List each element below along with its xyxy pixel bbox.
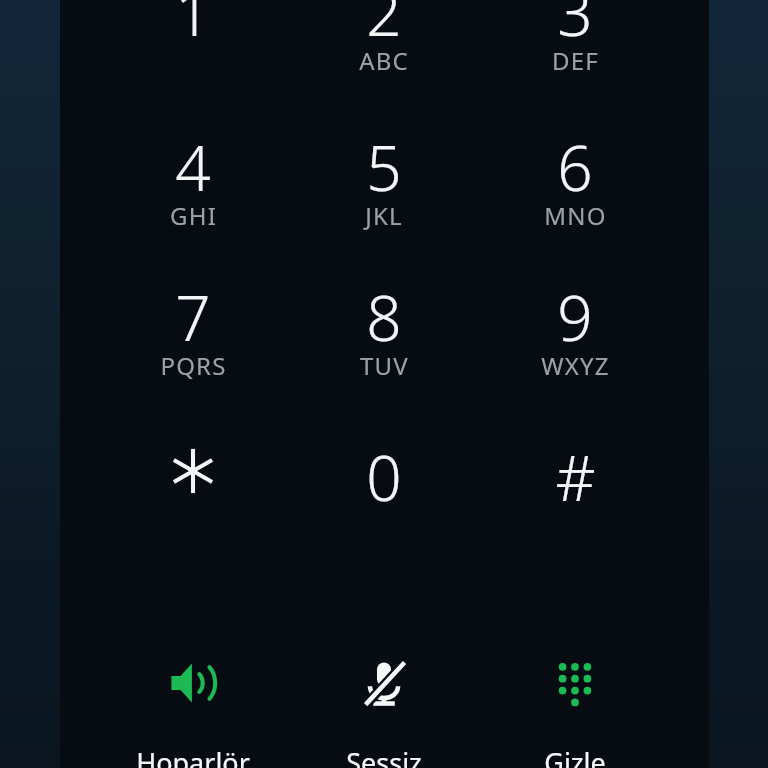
staticText: TUV [360, 349, 409, 382]
other: Gizle [544, 652, 606, 714]
button[interactable]: 2 [294, 0, 474, 102]
staticText: 2 [366, 0, 402, 42]
staticText: Gizle [544, 744, 606, 768]
staticText: Hoparlör [136, 744, 250, 768]
button[interactable]: 0 [294, 435, 474, 567]
staticText: 4 [175, 125, 211, 197]
button[interactable]: 9 [485, 275, 665, 407]
staticText: MNO [544, 199, 607, 232]
staticText: Sessiz [346, 744, 422, 768]
staticText: ABC [359, 44, 409, 77]
staticText: 9 [557, 275, 593, 347]
button[interactable]: 1 [103, 0, 283, 102]
button[interactable] [103, 435, 283, 567]
other: Sessiz [353, 652, 415, 714]
staticText: 7 [175, 275, 211, 347]
staticText: WXYZ [541, 349, 610, 382]
staticText: PQRS [160, 349, 227, 382]
staticText: 3 [557, 0, 593, 42]
button[interactable]: 4 [103, 125, 283, 257]
staticText: 5 [366, 125, 402, 197]
button[interactable]: Sessiz [294, 652, 474, 768]
button[interactable]: Hoparlör [103, 652, 283, 768]
staticText: 8 [366, 275, 402, 347]
staticText: DEF [552, 44, 599, 77]
staticText: # [555, 435, 596, 507]
button[interactable]: 7 [103, 275, 283, 407]
button[interactable]: 8 [294, 275, 474, 407]
staticText: 6 [557, 125, 593, 197]
staticText: GHI [170, 199, 217, 232]
button[interactable]: # [485, 435, 665, 567]
other: Hoparlör [162, 652, 224, 714]
button[interactable]: Gizle [485, 652, 665, 768]
staticText: 0 [366, 435, 402, 507]
button[interactable]: 5 [294, 125, 474, 257]
staticText: 1 [175, 0, 211, 42]
staticText: JKL [365, 199, 403, 232]
button[interactable]: 6 [485, 125, 665, 257]
button[interactable]: 3 [485, 0, 665, 102]
